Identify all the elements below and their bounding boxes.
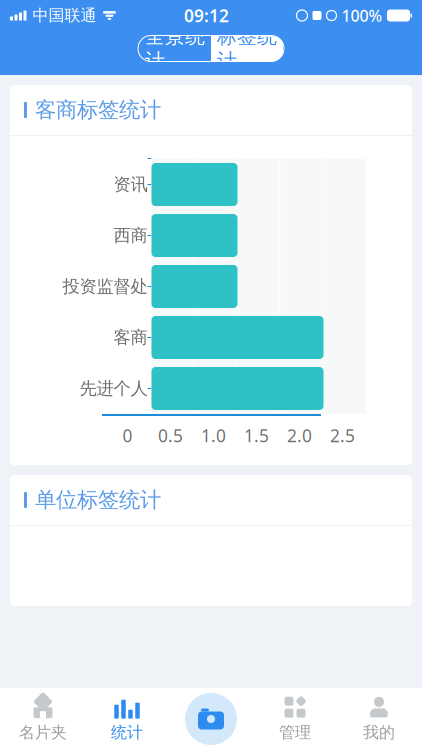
staticText: 客商标签统计 [35, 97, 161, 123]
staticText: 单位标签统计 [35, 487, 161, 513]
staticText: 我的 [363, 723, 395, 742]
button[interactable]: 统计 [85, 689, 169, 749]
staticText: 09:12 [184, 4, 229, 27]
staticText: 100% [341, 5, 382, 26]
staticText: 2.5 [330, 424, 355, 447]
button[interactable]: 标签统计 [211, 35, 283, 61]
staticText: 资讯 [113, 174, 147, 195]
staticText: 名片夹 [19, 723, 67, 742]
staticText: 标签统计 [217, 24, 277, 73]
staticText: 管理 [279, 723, 311, 742]
button[interactable]: 名片夹 [1, 689, 85, 749]
staticText: 投资监督处 [62, 276, 147, 297]
staticText: 先进个人 [79, 378, 147, 399]
button[interactable]: 全景统计 [139, 35, 211, 61]
staticText: 全景统计 [145, 24, 205, 73]
staticText: 0.5 [158, 424, 183, 447]
button[interactable]: Camera [169, 689, 253, 749]
staticText: 2.0 [287, 424, 312, 447]
button[interactable]: 我的 [337, 689, 421, 749]
staticText: 中国联通 [32, 6, 96, 25]
staticText: 统计 [111, 723, 143, 742]
staticText: 客商 [113, 327, 147, 348]
staticText: 1.5 [244, 424, 269, 447]
staticText: 1.0 [201, 424, 226, 447]
staticText: 0 [122, 424, 132, 447]
button[interactable]: 管理 [253, 689, 337, 749]
staticText: 西商 [113, 225, 147, 246]
